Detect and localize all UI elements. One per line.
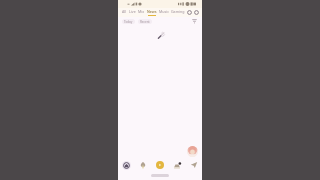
button[interactable]: Live	[128, 8, 137, 17]
staticText: Today	[124, 20, 133, 24]
button[interactable]: Explore	[134, 158, 151, 172]
staticText: Mix	[138, 9, 145, 14]
button[interactable]: Home	[118, 158, 134, 172]
button[interactable]: Cast	[186, 9, 193, 16]
button[interactable]: Gaming	[170, 8, 186, 17]
button[interactable]: Inbox	[168, 158, 185, 172]
staticText: All	[122, 9, 127, 14]
button[interactable]: Search	[193, 9, 200, 16]
staticText: News	[147, 9, 157, 14]
button[interactable]: News	[146, 8, 158, 17]
staticText: Live	[129, 9, 136, 14]
staticText: Gaming	[171, 9, 185, 14]
button[interactable]: Send	[185, 158, 202, 172]
button[interactable]: Recent	[138, 19, 152, 24]
button[interactable]: Music	[158, 8, 170, 17]
button[interactable]: All	[121, 8, 128, 17]
staticText: Recent	[140, 20, 150, 24]
button[interactable]: Profile	[187, 146, 198, 157]
button[interactable]: Create	[151, 158, 168, 172]
staticText: Music	[159, 9, 169, 14]
button[interactable]: Mix	[137, 8, 146, 17]
button[interactable]: Filter	[191, 18, 198, 25]
button[interactable]: Today	[122, 19, 135, 24]
